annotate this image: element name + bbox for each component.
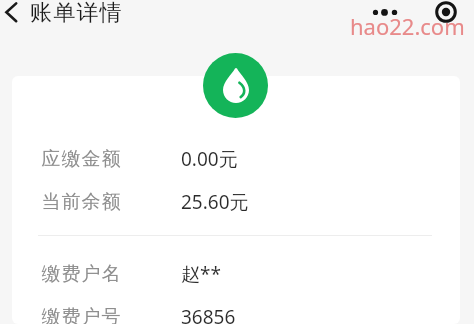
staticText: 缴费户名: [41, 262, 121, 286]
button[interactable]: More options: [366, 0, 402, 24]
staticText: 当前余额: [41, 190, 121, 214]
staticText: 赵**: [181, 261, 221, 287]
button[interactable]: 当前余额: [12, 187, 460, 217]
button[interactable]: Close: [434, 0, 460, 26]
button[interactable]: Water utility: [203, 53, 268, 118]
staticText: 账单详情: [30, 0, 123, 27]
staticText: 缴费户号: [41, 305, 121, 324]
staticText: hao22.com: [350, 11, 465, 41]
button[interactable]: 缴费户号: [12, 302, 460, 324]
staticText: 0.00元: [181, 146, 238, 172]
button[interactable]: 应缴金额: [12, 144, 460, 174]
button[interactable]: 缴费户名: [12, 259, 460, 289]
button[interactable]: Back: [0, 0, 30, 30]
staticText: 25.60元: [181, 189, 249, 215]
staticText: 36856: [181, 304, 236, 324]
staticText: 应缴金额: [41, 147, 121, 171]
